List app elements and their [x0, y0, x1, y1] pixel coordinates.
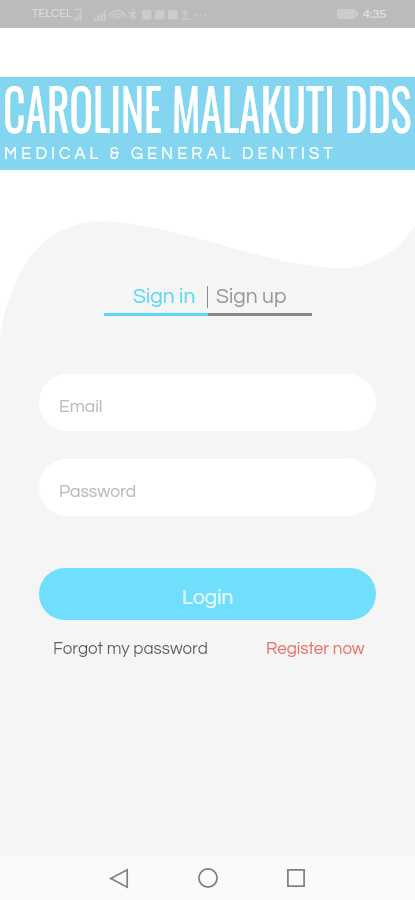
staticText: Password — [59, 483, 137, 501]
staticText: MEDICAL & GENERAL DENTIST — [4, 145, 337, 162]
button[interactable]: Back — [89, 856, 149, 900]
button[interactable]: Password — [39, 459, 376, 516]
button[interactable]: Login — [39, 568, 376, 620]
staticText: Sign in — [133, 286, 196, 308]
button[interactable]: Recents — [266, 856, 326, 900]
button[interactable]: Sign in — [124, 283, 207, 311]
staticText: 4:35 — [363, 8, 387, 21]
staticText: Email — [59, 398, 103, 416]
button[interactable]: Sign up — [208, 283, 296, 311]
staticText: CAROLINE MALAKUTI DDS — [3, 65, 412, 150]
staticText: Forgot my password — [53, 640, 208, 658]
button[interactable]: Forgot my password — [53, 636, 208, 662]
button[interactable]: Email — [39, 374, 376, 431]
button[interactable]: Home — [178, 856, 238, 900]
staticText: TELCEL — [32, 8, 73, 20]
staticText: Sign up — [216, 286, 287, 308]
staticText: Register now — [266, 640, 365, 658]
staticText: Login — [182, 587, 234, 609]
button[interactable]: Register now — [266, 636, 365, 662]
